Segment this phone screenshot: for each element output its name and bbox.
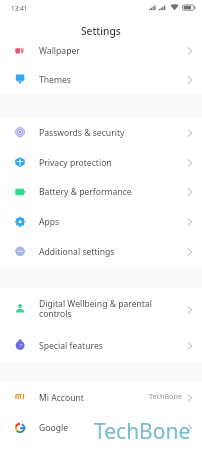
button[interactable]: Special features bbox=[0, 331, 202, 361]
button[interactable]: Apps bbox=[0, 207, 202, 237]
staticText: Digital Wellbeing & parental bbox=[39, 298, 152, 310]
staticText: Mi Account bbox=[39, 392, 84, 404]
button[interactable]: Digital Wellbeing & parental bbox=[0, 293, 202, 327]
button[interactable]: Passwords & security bbox=[0, 118, 202, 148]
staticText: controls bbox=[39, 308, 72, 320]
button[interactable]: Mi Account bbox=[0, 383, 202, 413]
button[interactable]: Privacy protection bbox=[0, 148, 202, 178]
staticText: Apps bbox=[39, 216, 60, 228]
staticText: Passwords & security bbox=[39, 127, 125, 139]
staticText: Google bbox=[39, 422, 69, 434]
staticText: Wallpaper bbox=[39, 45, 80, 57]
staticText: TechBone bbox=[149, 391, 182, 401]
button[interactable]: Additional settings bbox=[0, 237, 202, 267]
staticText: Additional settings bbox=[39, 246, 115, 258]
staticText: Themes bbox=[39, 74, 71, 86]
staticText: 13:41 bbox=[11, 4, 28, 13]
button[interactable]: Battery & performance bbox=[0, 177, 202, 207]
button[interactable]: Google bbox=[0, 413, 202, 443]
button[interactable]: Wallpaper bbox=[0, 36, 202, 65]
staticText: Battery & performance bbox=[39, 186, 132, 198]
staticText: Privacy protection bbox=[39, 157, 112, 169]
button[interactable]: Themes bbox=[0, 65, 202, 94]
staticText: Settings bbox=[81, 24, 121, 38]
staticText: Special features bbox=[39, 340, 103, 352]
staticText: TechBone bbox=[94, 417, 191, 446]
